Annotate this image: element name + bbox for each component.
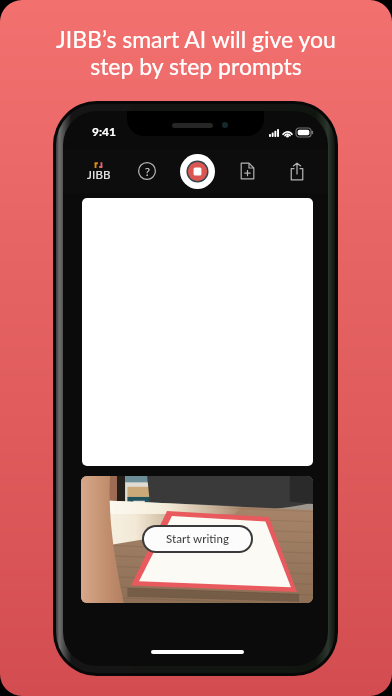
staticText: JIBB (87, 168, 111, 182)
staticText: ? (145, 165, 150, 178)
button[interactable]: Record (179, 153, 215, 189)
button[interactable]: Start writing (144, 527, 251, 551)
staticText: Start writing (166, 532, 230, 546)
button[interactable]: Help (133, 157, 161, 185)
button[interactable]: New document (233, 157, 261, 185)
button[interactable]: JIBB home (83, 158, 113, 184)
button[interactable]: Share (283, 157, 311, 185)
staticText: 9:41 (92, 124, 116, 138)
staticText: JIBB’s smart AI will give you step by st… (56, 25, 336, 80)
